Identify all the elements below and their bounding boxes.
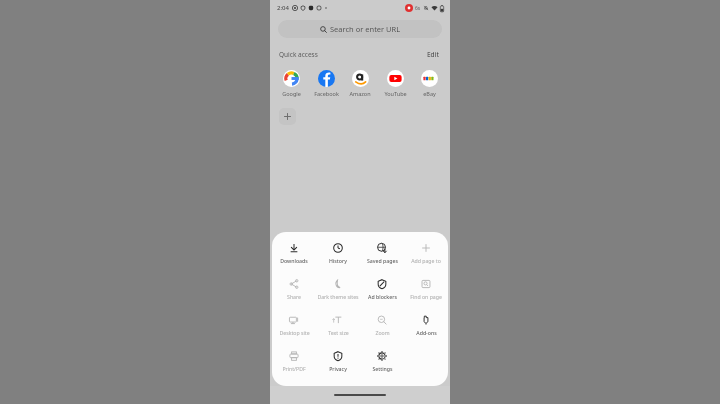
staticText: Zoom [375,329,390,336]
button[interactable]: Downloads [272,240,316,270]
staticText: Settings [372,365,393,372]
button[interactable]: Edit [425,48,441,61]
staticText: History [329,257,347,264]
staticText: 6s [415,5,421,12]
button: Print/PDF [272,348,316,378]
staticText: Print/PDF [282,365,306,372]
staticText: Google [282,90,301,97]
staticText: Amazon [349,90,371,97]
staticText: Desktop site [279,329,310,336]
button[interactable]: Ad blockers [360,276,404,306]
button[interactable]: History [316,240,360,270]
button[interactable]: eBay [414,69,444,98]
staticText: Text size [328,329,349,336]
button[interactable]: Google [276,69,306,98]
button: Dark theme sites [316,276,360,306]
staticText: Add-ons [416,329,437,336]
staticText: 2:04 [277,4,289,12]
button: Find on page [404,276,448,306]
button[interactable]: YouTube [380,69,410,98]
staticText: Dark theme sites [317,293,359,300]
button[interactable]: Facebook [311,69,341,98]
button[interactable]: Privacy [316,348,360,378]
staticText: Edit [427,50,439,59]
staticText: Ad blockers [368,293,397,300]
staticText: Saved pages [367,257,398,264]
button: Zoom [360,312,404,342]
staticText: Facebook [314,90,339,97]
staticText: Add page to [411,257,441,264]
button[interactable]: Add-ons [404,312,448,342]
staticText: Search or enter URL [330,24,401,34]
button[interactable]: Settings [360,348,404,378]
staticText: Share [287,293,301,300]
button: Text size [316,312,360,342]
staticText: Find on page [410,293,442,300]
button[interactable]: Amazon [345,69,375,98]
button: Desktop site [272,312,316,342]
button[interactable]: Saved pages [360,240,404,270]
button[interactable]: Add shortcut [279,108,296,125]
staticText: eBay [423,90,436,97]
button: Share [272,276,316,306]
staticText: Privacy [329,365,347,372]
button: Add page to [404,240,448,270]
staticText: Downloads [280,257,308,264]
staticText: YouTube [384,90,407,97]
button[interactable]: Search or enter URL [278,20,442,38]
staticText: Quick access [279,50,318,59]
